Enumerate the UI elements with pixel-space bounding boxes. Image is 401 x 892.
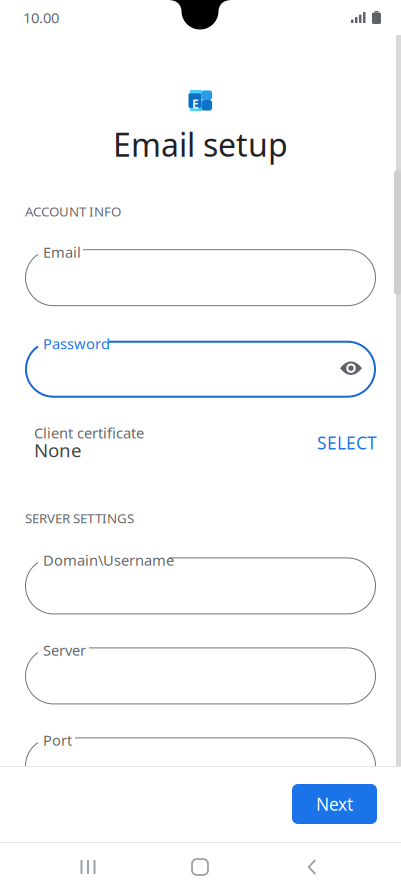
staticText: Client certificate [34,423,144,443]
staticText: ACCOUNT INFO [25,202,121,220]
button[interactable]: SELECT [309,422,385,463]
button[interactable]: Back [256,842,368,892]
staticText: Email [43,242,81,262]
button[interactable]: Next [292,784,377,824]
staticText: Port [43,730,72,750]
staticText: SERVER SETTINGS [25,509,134,527]
staticText: Email setup [113,123,288,165]
staticText: None [34,438,82,462]
staticText: 10.00 [23,8,59,27]
button[interactable]: Show password [329,350,372,386]
staticText: Server [43,640,86,660]
button[interactable]: Home [144,842,256,892]
staticText: E [192,96,199,112]
staticText: SELECT [317,431,377,454]
staticText: Password [43,334,110,353]
button[interactable]: Recent apps [32,842,144,892]
staticText: Domain\Username [43,550,174,570]
staticText: Next [316,792,353,815]
